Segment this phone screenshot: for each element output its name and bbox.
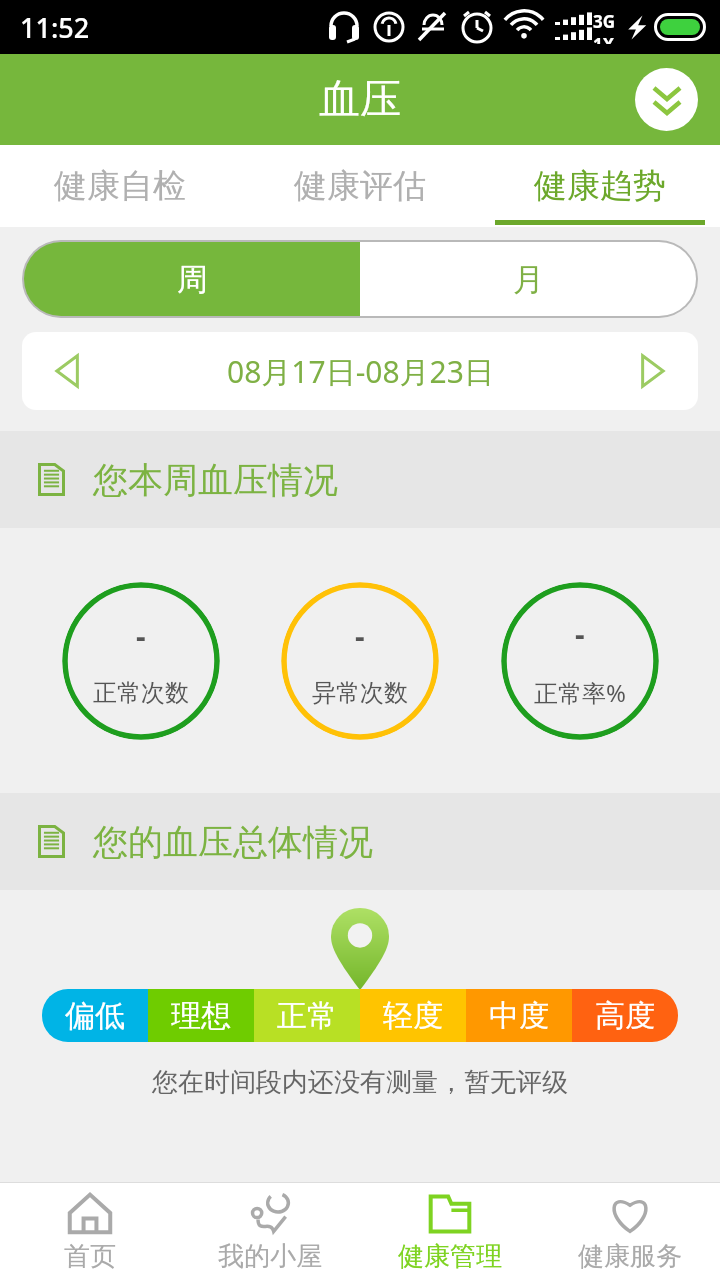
staticText: 高度 xyxy=(595,997,655,1035)
staticText: 正常 xyxy=(277,997,337,1035)
staticText: 健康管理 xyxy=(398,1240,502,1273)
button[interactable]: 轻度 xyxy=(360,989,466,1042)
staticText: 血压 xyxy=(319,74,401,126)
button[interactable]: - xyxy=(62,582,220,740)
button[interactable]: - xyxy=(501,582,659,740)
button[interactable]: 健康服务 xyxy=(540,1183,720,1280)
button[interactable]: Next week xyxy=(604,332,698,410)
button[interactable]: 首页 xyxy=(0,1183,180,1280)
staticText: 11:52 xyxy=(20,9,90,46)
staticText: 1X xyxy=(593,33,615,44)
staticText: 健康服务 xyxy=(578,1240,682,1273)
button[interactable]: 健康自检 xyxy=(0,145,240,227)
staticText: 中度 xyxy=(489,997,549,1035)
button[interactable]: 健康趋势 xyxy=(480,145,720,227)
staticText: - xyxy=(355,615,365,656)
button[interactable]: 月 xyxy=(360,242,696,316)
button[interactable]: 偏低 xyxy=(42,989,148,1042)
staticText: 我的小屋 xyxy=(218,1240,322,1273)
staticText: 轻度 xyxy=(383,997,443,1035)
staticText: 正常次数 xyxy=(93,678,189,708)
staticText: 偏低 xyxy=(65,997,125,1035)
staticText: 您的血压总体情况 xyxy=(93,820,373,864)
staticText: 您在时间段内还没有测量，暂无评级 xyxy=(0,1066,720,1099)
staticText: 异常次数 xyxy=(312,678,408,708)
staticText: - xyxy=(136,615,146,656)
staticText: 健康自检 xyxy=(54,165,186,207)
staticText: 08月17日-08月23日 xyxy=(227,351,494,392)
staticText: 月 xyxy=(513,260,544,299)
staticText: - xyxy=(575,613,585,654)
button[interactable]: 我的小屋 xyxy=(180,1183,360,1280)
button[interactable]: 08月17日-08月23日 xyxy=(116,332,604,410)
staticText: 健康趋势 xyxy=(534,165,666,207)
button[interactable]: 正常 xyxy=(254,989,360,1042)
staticText: 正常率% xyxy=(534,676,626,709)
button[interactable]: Previous week xyxy=(22,332,116,410)
staticText: 周 xyxy=(177,260,208,299)
button[interactable]: 周 xyxy=(24,242,360,316)
button[interactable]: Expand xyxy=(635,68,698,131)
staticText: 3G xyxy=(593,10,616,33)
staticText: 健康评估 xyxy=(294,165,426,207)
staticText: 理想 xyxy=(171,997,231,1035)
button[interactable]: 健康评估 xyxy=(240,145,480,227)
button[interactable]: - xyxy=(281,582,439,740)
staticText: 您本周血压情况 xyxy=(93,458,338,502)
button[interactable]: 高度 xyxy=(572,989,678,1042)
staticText: 首页 xyxy=(64,1240,116,1273)
button[interactable]: 理想 xyxy=(148,989,254,1042)
button[interactable]: 中度 xyxy=(466,989,572,1042)
button[interactable]: 健康管理 xyxy=(360,1183,540,1280)
